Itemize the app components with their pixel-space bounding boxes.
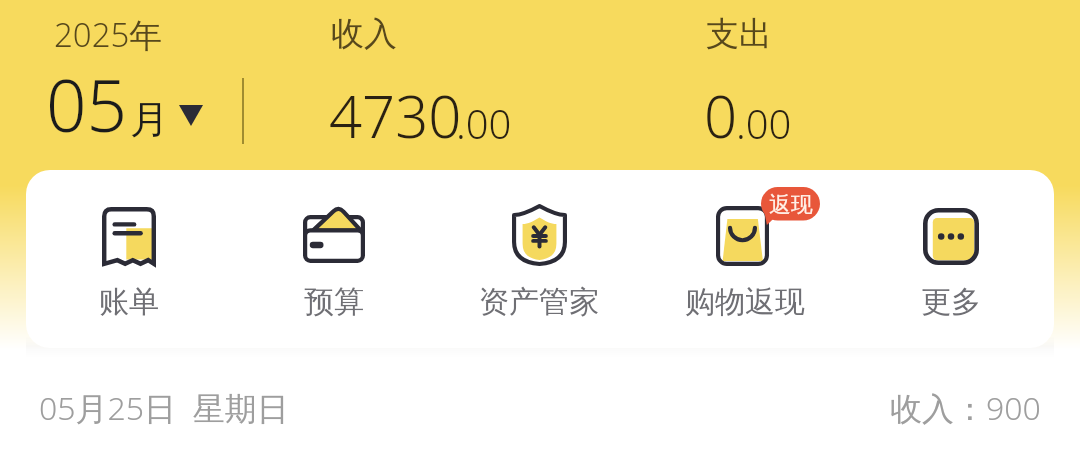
button[interactable]: 2025年 <box>30 0 244 152</box>
staticText: 05 <box>46 56 128 153</box>
staticText: 0 <box>704 76 738 155</box>
staticText: .00 <box>456 96 512 150</box>
staticText: 4730 <box>329 76 462 155</box>
staticText: 收入 <box>331 13 397 55</box>
staticText: 2025年 <box>54 12 163 57</box>
staticText: .00 <box>736 96 792 150</box>
button[interactable]: 返现 <box>642 170 848 348</box>
staticText: 资产管家 <box>479 283 599 321</box>
staticText: 支出 <box>706 13 772 55</box>
staticText: 更多 <box>921 283 981 321</box>
button[interactable]: 资产管家 <box>436 170 642 348</box>
button[interactable]: 预算 <box>231 170 436 348</box>
button[interactable]: 账单 <box>26 170 231 348</box>
staticText: 收入：900 <box>890 386 1041 430</box>
staticText: 预算 <box>304 283 364 321</box>
button[interactable]: 更多 <box>848 170 1054 348</box>
staticText: 账单 <box>99 283 159 321</box>
staticText: 购物返现 <box>685 283 805 321</box>
staticText: 返现 <box>769 191 813 219</box>
staticText: 月 <box>130 95 169 144</box>
staticText: 05月25日 星期日 <box>39 386 289 430</box>
